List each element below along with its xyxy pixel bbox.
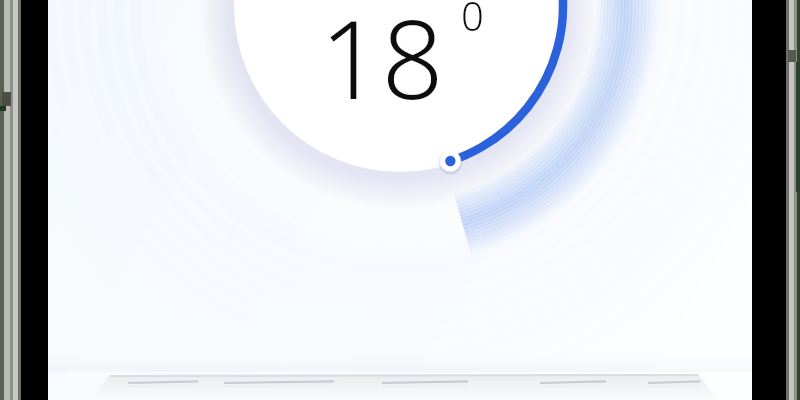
- staticText: 18: [320, 0, 444, 131]
- button[interactable]: Temperature 18 degrees: [0, 0, 800, 400]
- staticText: 0: [461, 0, 484, 42]
